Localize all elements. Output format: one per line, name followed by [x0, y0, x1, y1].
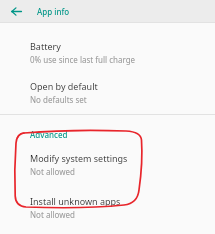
staticText: Not allowed	[30, 166, 75, 177]
staticText: 0% use since last full charge	[30, 54, 136, 65]
button[interactable]: Open by default	[0, 65, 215, 105]
staticText: App info	[37, 6, 70, 17]
staticText: Not allowed	[30, 209, 75, 220]
staticText: Install unknown apps	[30, 195, 121, 207]
button[interactable]: Battery	[0, 23, 215, 65]
button[interactable]: Install unknown apps	[0, 177, 215, 220]
staticText: Battery	[30, 40, 61, 52]
staticText: Open by default	[30, 80, 98, 92]
staticText: Advanced	[30, 129, 68, 140]
staticText: No defaults set	[30, 94, 87, 105]
button[interactable]: Back	[8, 3, 24, 19]
staticText: Modify system settings	[30, 152, 128, 164]
button[interactable]: Modify system settings	[0, 140, 215, 177]
